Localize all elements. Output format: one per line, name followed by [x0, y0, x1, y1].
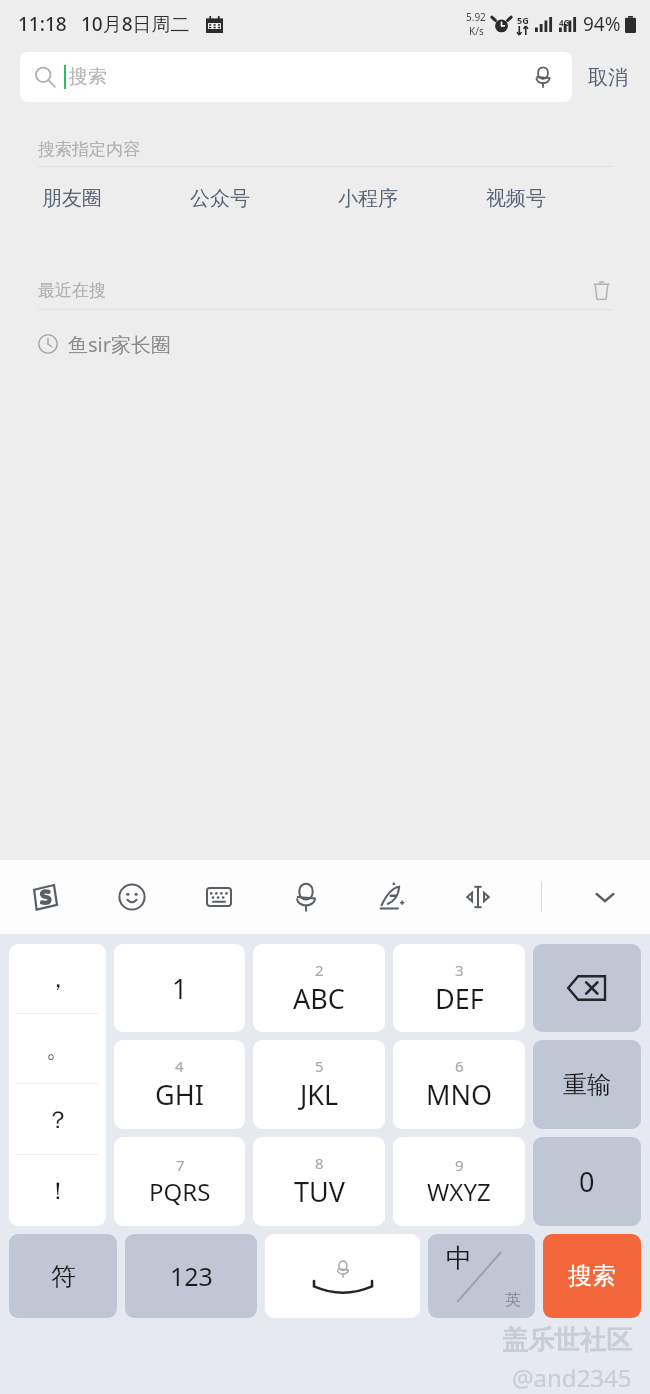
button[interactable]: 符 — [9, 1234, 117, 1318]
button[interactable]: 7 — [114, 1137, 245, 1226]
button[interactable]: 小程序 — [334, 178, 402, 219]
button[interactable]: 公众号 — [186, 178, 254, 219]
staticText: 7 — [176, 1155, 185, 1175]
staticText: GHI — [155, 1076, 204, 1113]
button[interactable]: 朋友圈 — [38, 178, 106, 219]
button[interactable]: 5 — [253, 1040, 385, 1129]
staticText: 8 — [315, 1153, 324, 1173]
staticText: ， — [46, 964, 70, 994]
staticText: 英 — [505, 1290, 521, 1310]
staticText: 搜索指定内容 — [38, 139, 140, 160]
staticText: 重输 — [563, 1070, 611, 1100]
staticText: TUV — [294, 1173, 345, 1210]
staticText: 1 — [172, 970, 188, 1007]
staticText: 94% — [583, 11, 621, 37]
staticText: 小程序 — [338, 186, 398, 211]
button[interactable]: 6 — [393, 1040, 525, 1129]
button[interactable]: 0 — [533, 1137, 641, 1226]
staticText: 搜索 — [568, 1261, 616, 1291]
staticText: 公众号 — [190, 186, 250, 211]
staticText: 4G — [559, 17, 570, 28]
staticText: 10月8日周二 — [81, 11, 190, 37]
staticText: ABC — [293, 980, 345, 1017]
button[interactable]: Voice — [283, 874, 329, 920]
staticText: 11:18 — [18, 11, 67, 37]
button[interactable]: 搜索 — [543, 1234, 641, 1318]
button[interactable]: 重输 — [533, 1040, 641, 1129]
staticText: 最近在搜 — [38, 280, 106, 301]
staticText: JKL — [300, 1076, 339, 1113]
button[interactable]: Keyboard layout — [196, 874, 242, 920]
button[interactable]: Clear history — [586, 275, 616, 305]
staticText: 5 — [315, 1056, 324, 1076]
staticText: 盖乐世社区 — [502, 1324, 632, 1357]
staticText: 2 — [315, 960, 324, 980]
button[interactable]: Delete — [533, 944, 641, 1032]
button[interactable]: Sogou input — [22, 874, 68, 920]
staticText: 5.92 — [466, 10, 486, 24]
staticText: 中 — [446, 1242, 472, 1275]
button[interactable]: 鱼sir家长圈 — [0, 310, 650, 378]
button[interactable]: 3 — [393, 944, 525, 1032]
staticText: K/s — [469, 24, 484, 38]
staticText: MNO — [426, 1076, 493, 1113]
staticText: ！ — [46, 1176, 70, 1206]
staticText: 4 — [175, 1056, 184, 1076]
button[interactable]: 取消 — [586, 59, 630, 96]
staticText: 取消 — [588, 65, 628, 90]
button[interactable]: 123 — [125, 1234, 257, 1318]
button[interactable]: Emoji — [109, 874, 155, 920]
staticText: 。 — [46, 1034, 70, 1064]
staticText: DEF — [435, 980, 484, 1017]
button[interactable]: 2 — [253, 944, 385, 1032]
staticText: @and2345 — [512, 1361, 632, 1394]
button[interactable]: Voice input — [528, 62, 558, 92]
staticText: 视频号 — [486, 186, 546, 211]
button[interactable]: 4 — [114, 1040, 245, 1129]
staticText: 9 — [455, 1155, 464, 1175]
staticText: 搜索 — [69, 65, 107, 89]
button[interactable]: 8 — [253, 1137, 385, 1226]
button[interactable]: Space — [265, 1234, 420, 1318]
staticText: 0 — [579, 1163, 595, 1200]
button[interactable]: ， — [9, 944, 106, 1014]
staticText: 5G — [517, 14, 529, 26]
staticText: ？ — [46, 1105, 70, 1135]
button[interactable]: Move cursor — [455, 874, 501, 920]
button[interactable]: ！ — [9, 1155, 106, 1226]
staticText: 123 — [170, 1259, 213, 1293]
button[interactable]: 视频号 — [482, 178, 550, 219]
staticText: PQRS — [149, 1175, 211, 1208]
staticText: 鱼sir家长圈 — [68, 331, 171, 358]
button[interactable]: ？ — [9, 1084, 106, 1155]
staticText: 符 — [51, 1261, 76, 1292]
button[interactable]: Switch Chinese English — [428, 1234, 535, 1318]
button[interactable]: Handwriting — [369, 874, 415, 920]
button[interactable]: 。 — [9, 1014, 106, 1084]
staticText: WXYZ — [427, 1175, 491, 1208]
button[interactable]: 搜索 — [20, 52, 572, 102]
staticText: 6 — [455, 1056, 464, 1076]
button[interactable]: 1 — [114, 944, 245, 1032]
button[interactable]: 9 — [393, 1137, 525, 1226]
staticText: 朋友圈 — [42, 186, 102, 211]
staticText: 3 — [455, 960, 464, 980]
button[interactable]: Hide keyboard — [582, 874, 628, 920]
